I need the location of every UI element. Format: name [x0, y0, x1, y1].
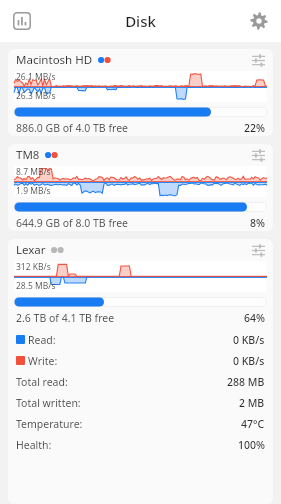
- staticText: Health:: [16, 438, 52, 452]
- staticText: 0 KB/s: [233, 333, 265, 347]
- button[interactable]: TM8: [8, 144, 273, 231]
- staticText: Macintosh HD: [16, 52, 93, 68]
- staticText: 886.0 GB of 4.0 TB free: [16, 121, 128, 135]
- staticText: Total read:: [16, 375, 68, 389]
- staticText: 47°C: [241, 417, 265, 431]
- staticText: Write:: [28, 354, 58, 368]
- staticText: 644.9 GB of 8.0 TB free: [16, 216, 128, 230]
- button[interactable]: Read:: [8, 329, 273, 350]
- staticText: 26.1 MB/s: [16, 71, 56, 83]
- button[interactable]: Write:: [8, 350, 273, 371]
- staticText: 64%: [244, 311, 265, 325]
- staticText: 2.6 TB of 4.1 TB free: [16, 311, 115, 325]
- button[interactable]: Health:: [8, 434, 273, 455]
- staticText: TM8: [16, 147, 40, 163]
- staticText: Temperature:: [16, 417, 83, 431]
- staticText: 22%: [244, 121, 265, 135]
- button[interactable]: Tune: [249, 51, 267, 69]
- staticText: 1.9 MB/s: [16, 185, 51, 197]
- staticText: Read:: [28, 333, 56, 347]
- button[interactable]: Charts: [12, 11, 32, 31]
- button[interactable]: Tune: [249, 241, 267, 259]
- staticText: 8%: [250, 216, 265, 230]
- button[interactable]: Total read:: [8, 371, 273, 392]
- staticText: 100%: [238, 438, 265, 452]
- button[interactable]: Total written:: [8, 392, 273, 413]
- staticText: Total written:: [16, 396, 81, 410]
- button[interactable]: Tune: [249, 146, 267, 164]
- staticText: 288 MB: [227, 375, 265, 389]
- staticText: 0 KB/s: [233, 354, 265, 368]
- button[interactable]: Macintosh HD: [8, 49, 273, 136]
- button[interactable]: Lexar: [8, 239, 273, 504]
- staticText: 26.3 MB/s: [16, 90, 56, 102]
- staticText: Lexar: [16, 242, 46, 258]
- staticText: 312 KB/s: [16, 261, 51, 273]
- staticText: 28.5 MB/s: [16, 280, 56, 292]
- staticText: Disk: [125, 11, 156, 31]
- button[interactable]: Settings: [247, 9, 271, 33]
- staticText: 8.7 MB/s: [16, 166, 51, 178]
- staticText: 2 MB: [239, 396, 265, 410]
- button[interactable]: Temperature:: [8, 413, 273, 434]
